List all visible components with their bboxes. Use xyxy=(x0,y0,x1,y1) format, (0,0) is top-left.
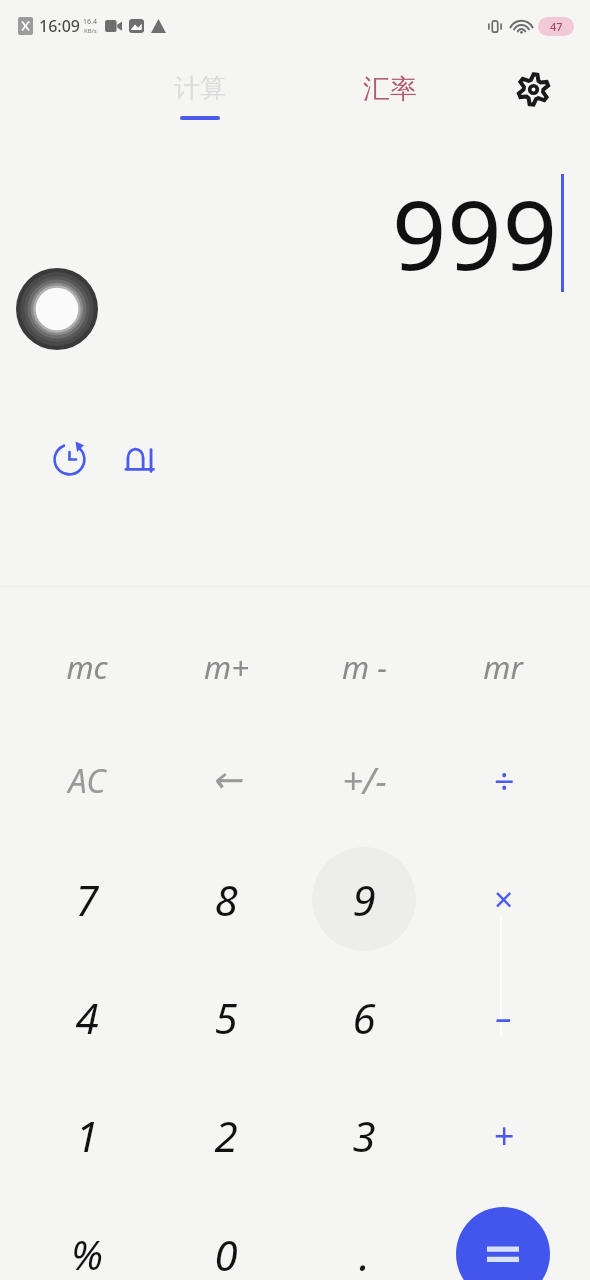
staticText: 8 xyxy=(214,871,238,928)
button[interactable]: 3 xyxy=(302,1080,426,1190)
button[interactable]: 1 xyxy=(25,1080,149,1190)
staticText: + xyxy=(493,1111,514,1160)
button[interactable]: 汇率 xyxy=(320,52,460,140)
staticText: 0 xyxy=(214,1226,238,1280)
button[interactable]: mr xyxy=(441,612,565,722)
button[interactable]: – xyxy=(441,962,565,1072)
staticText: 9 xyxy=(352,871,376,928)
staticText: ← xyxy=(211,759,242,801)
staticText: 1 xyxy=(75,1107,99,1164)
staticText: 16:09 xyxy=(39,15,80,37)
staticText: ÷ xyxy=(493,756,514,805)
button[interactable]: 6 xyxy=(302,962,426,1072)
button[interactable]: Equals xyxy=(456,1207,550,1280)
button[interactable]: 8 xyxy=(164,844,288,954)
staticText: 47 xyxy=(550,19,563,34)
button[interactable]: +/- xyxy=(302,725,426,835)
button[interactable]: 0 xyxy=(164,1199,288,1280)
staticText: × xyxy=(493,876,513,922)
button[interactable]: AC xyxy=(25,725,149,835)
button[interactable]: 计算 xyxy=(130,52,270,140)
button[interactable]: m+ xyxy=(164,612,288,722)
button[interactable]: Settings xyxy=(505,61,561,117)
button[interactable]: 4 xyxy=(25,962,149,1072)
button[interactable]: m - xyxy=(302,612,426,722)
button[interactable]: . xyxy=(302,1199,426,1280)
staticText: 3 xyxy=(352,1107,376,1164)
staticText: m+ xyxy=(204,646,249,688)
button[interactable]: mc xyxy=(25,612,149,722)
button[interactable]: + xyxy=(441,1080,565,1190)
button[interactable]: 5 xyxy=(164,962,288,1072)
staticText: 999 xyxy=(392,168,559,297)
staticText: mr xyxy=(483,646,523,688)
staticText: m - xyxy=(342,646,387,688)
staticText: KB/s xyxy=(84,27,97,35)
button[interactable]: 9 xyxy=(302,844,426,954)
staticText: – xyxy=(495,994,512,1040)
button[interactable]: Function graph xyxy=(114,435,162,483)
button[interactable]: 7 xyxy=(25,844,149,954)
staticText: mc xyxy=(66,646,108,688)
staticText: . xyxy=(359,1226,370,1280)
button[interactable]: % xyxy=(25,1199,149,1280)
staticText: 汇率 xyxy=(363,72,417,106)
button[interactable]: Lens xyxy=(16,268,98,350)
button[interactable]: 2 xyxy=(164,1080,288,1190)
staticText: 5 xyxy=(214,989,238,1046)
staticText: 16.4 xyxy=(83,17,97,27)
button[interactable]: History xyxy=(45,435,93,483)
staticText: AC xyxy=(68,758,106,803)
staticText: 7 xyxy=(75,871,99,928)
staticText: +/- xyxy=(342,756,387,805)
staticText: % xyxy=(71,1227,103,1280)
staticText: 计算 xyxy=(174,72,226,105)
button[interactable]: ← xyxy=(164,725,288,835)
button[interactable]: ÷ xyxy=(441,725,565,835)
button[interactable]: × xyxy=(441,844,565,954)
staticText: 6 xyxy=(352,989,376,1046)
staticText: 2 xyxy=(214,1107,238,1164)
staticText: 4 xyxy=(75,989,99,1046)
